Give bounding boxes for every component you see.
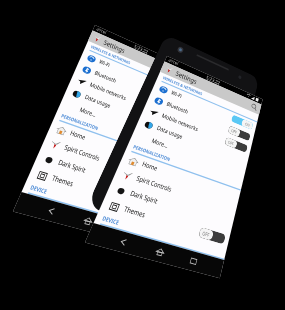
staticText: Spirit Controls [63,143,101,163]
button[interactable]: Recents [116,224,127,236]
staticText: Themes [50,173,75,190]
button[interactable]: Recents [188,255,199,267]
button[interactable]: Home [119,150,241,204]
staticText: Mobile networks [160,112,200,134]
staticText: DEVICE [29,183,48,195]
staticText: Spirit Controls [135,174,173,194]
staticText: OFF [227,139,235,147]
button[interactable]: Themes [99,194,231,248]
staticText: More... [150,136,170,151]
staticText: More... [78,105,98,120]
staticText: Home [69,128,87,142]
staticText: Wi-Fi [170,89,183,100]
staticText: OFF [159,96,166,104]
button[interactable]: Home [154,246,166,258]
staticText: DEVICE [101,214,120,226]
staticText: ON [173,90,179,97]
button[interactable]: Bluetooth [75,60,182,114]
staticText: aircel [95,26,108,36]
staticText: PERSONALIZATION [60,112,99,132]
staticText: WIRELESS & NETWORKS [90,44,131,66]
button[interactable]: OFF [224,137,248,153]
staticText: PERSONALIZATION [132,143,171,163]
staticText: aircel [167,57,180,67]
staticText: Data usage [155,124,184,142]
staticText: Bluetooth [165,100,190,116]
button[interactable]: Home [82,215,94,227]
button[interactable]: Search [178,71,187,81]
button[interactable]: OFF [156,94,179,110]
button[interactable]: Spirit Controls [41,133,165,187]
staticText: Dark Spirit [57,157,87,176]
button[interactable]: Dark Spirit [106,179,234,233]
staticText: OFF [202,229,211,238]
button[interactable]: More... [58,96,174,150]
staticText: Wi-Fi [98,58,111,69]
staticText: Bluetooth [93,69,118,85]
button[interactable]: ON [231,114,253,130]
staticText: Home [141,159,159,173]
button[interactable]: Wi-Fi [80,49,185,102]
button[interactable]: Data usage [136,114,249,169]
button[interactable]: OFF [228,125,251,141]
staticText: OFF [231,127,238,135]
button[interactable]: Mobile networks [141,102,252,156]
staticText: Dark Spirit [129,188,159,207]
button[interactable]: Back [44,205,58,217]
button[interactable]: OFF [152,106,176,122]
button[interactable]: OFF [126,196,154,213]
staticText: Data usage [83,93,112,111]
staticText: Mobile networks [88,81,128,103]
button[interactable]: Bluetooth [147,91,254,145]
button[interactable]: Themes [27,163,159,217]
staticText: Themes [122,204,147,221]
staticText: WIRELESS & NETWORKS [162,75,203,97]
button[interactable]: ON [159,83,181,99]
button[interactable]: Data usage [64,83,177,138]
staticText: Settings [102,38,127,55]
button[interactable]: Wi-Fi [152,80,257,133]
staticText: 5:23:22 [133,43,149,55]
button[interactable]: Spirit Controls [113,164,237,218]
button[interactable]: Mobile networks [69,71,180,125]
button[interactable]: Dark Spirit [34,148,162,202]
button[interactable]: Home [47,119,169,173]
staticText: OFF [155,108,163,116]
button[interactable]: Back [116,236,130,248]
staticText: ON [245,121,251,128]
button[interactable]: Search [250,102,259,112]
staticText: 5:23:22 [205,74,221,86]
staticText: Settings [174,69,199,86]
button[interactable]: OFF [198,227,226,244]
button[interactable]: More... [130,127,246,181]
